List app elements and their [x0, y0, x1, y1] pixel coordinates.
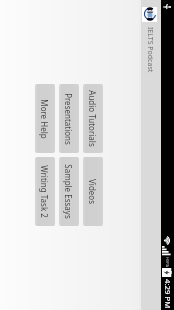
button[interactable]: Videos [83, 157, 103, 226]
staticText: Audio Tutorials [87, 90, 98, 147]
staticText: Videos [87, 179, 98, 204]
button[interactable]: Presentations [59, 84, 79, 153]
button[interactable]: Audio Tutorials [83, 84, 103, 153]
staticText: Sample Essays [63, 164, 74, 219]
staticText: More Help [39, 99, 50, 139]
staticText: Writing Task 2 [39, 165, 50, 218]
staticText: 4:29 PM [162, 279, 173, 309]
button[interactable]: Writing Task 2 [35, 157, 55, 226]
staticText: HSPA [165, 257, 170, 267]
button[interactable]: Sample Essays [59, 157, 79, 226]
button[interactable]: More Help [35, 84, 55, 153]
staticText: Presentations [63, 93, 74, 145]
staticText: IELTS Podcast [145, 27, 155, 73]
other: USB connected [162, 2, 172, 12]
